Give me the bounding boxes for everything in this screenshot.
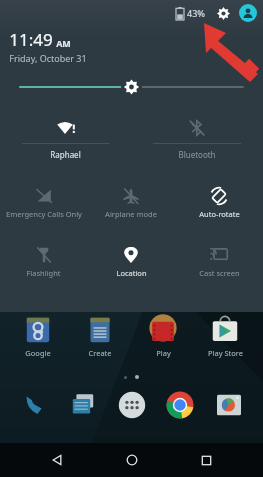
button[interactable]: Create [71, 313, 129, 358]
button[interactable]: Settings [214, 4, 232, 22]
button[interactable]: Messages [63, 385, 103, 425]
staticText: Emergency Calls Only [6, 209, 82, 219]
button[interactable]: Recent apps [188, 443, 224, 477]
staticText: Bluetooth [178, 149, 216, 160]
button[interactable]: Location [87, 242, 175, 286]
staticText: Play [156, 348, 171, 358]
staticText: Raphael [50, 149, 81, 160]
button[interactable]: Apps [112, 385, 152, 425]
button[interactable]: Brightness [0, 74, 263, 100]
button[interactable]: Emergency Calls Only [0, 183, 87, 227]
button[interactable]: Raphael [0, 113, 131, 171]
staticText: Cast screen [199, 268, 240, 278]
button[interactable]: Chrome [160, 385, 200, 425]
staticText: Play Store [208, 348, 243, 358]
button[interactable]: Flashlight [0, 242, 87, 286]
button[interactable]: Play [134, 313, 192, 358]
staticText: Airplane mode [105, 209, 157, 219]
staticText: AM [56, 37, 71, 49]
button[interactable]: Google [9, 313, 67, 358]
button[interactable]: User profile [239, 4, 257, 22]
staticText: Location [116, 268, 147, 278]
button[interactable]: Home [114, 443, 150, 477]
staticText: Flashlight [26, 268, 61, 278]
staticText: 43% [187, 7, 205, 19]
button[interactable]: Phone [15, 385, 55, 425]
button[interactable]: Play Store [196, 313, 254, 358]
button[interactable]: Bluetooth [131, 113, 263, 171]
button[interactable]: Airplane mode [87, 183, 175, 227]
staticText: 11:49 [9, 28, 53, 51]
staticText: Google [25, 348, 51, 358]
button[interactable]: Camera [209, 385, 249, 425]
button[interactable]: Back [39, 443, 75, 477]
staticText: Create [88, 348, 112, 358]
staticText: Auto-rotate [199, 209, 240, 219]
button[interactable]: Cast screen [175, 242, 263, 286]
button[interactable]: Auto-rotate [175, 183, 263, 227]
staticText: Friday, October 31 [9, 52, 87, 64]
